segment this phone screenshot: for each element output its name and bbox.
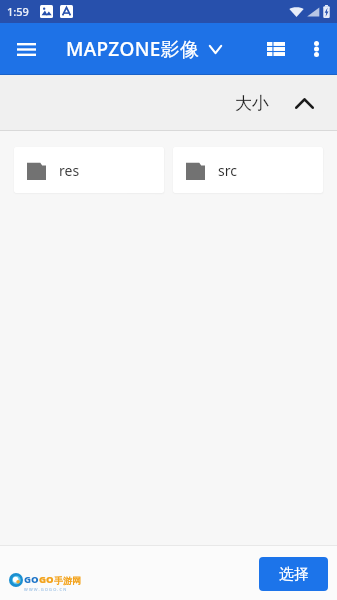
button[interactable]: 选择 bbox=[259, 557, 328, 591]
button[interactable]: Change view mode bbox=[256, 29, 296, 69]
button[interactable]: MAPZONE影像 bbox=[66, 36, 222, 62]
staticText: res bbox=[59, 161, 80, 180]
button[interactable]: src bbox=[173, 147, 323, 193]
staticText: 选择 bbox=[279, 565, 309, 584]
staticText: 手游网 bbox=[54, 575, 81, 586]
staticText: 大小 bbox=[235, 93, 269, 114]
staticText: GO bbox=[39, 573, 54, 586]
staticText: WWW.GOGO.CN bbox=[24, 587, 68, 592]
staticText: MAPZONE影像 bbox=[66, 36, 200, 62]
button[interactable]: res bbox=[14, 147, 164, 193]
button[interactable]: More options bbox=[296, 29, 336, 69]
staticText: src bbox=[218, 161, 237, 180]
staticText: 1:59 bbox=[7, 4, 29, 19]
staticText: GO bbox=[24, 573, 39, 586]
button[interactable]: 大小 bbox=[235, 93, 314, 114]
button[interactable]: Open navigation menu bbox=[6, 29, 46, 69]
